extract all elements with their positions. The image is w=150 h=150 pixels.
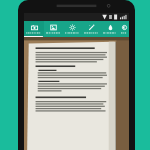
button[interactable]: Grey Mode [101,21,120,36]
button[interactable]: Lighten [63,21,82,36]
button[interactable]: Scan [24,21,44,36]
button[interactable]: Original [44,21,63,36]
button[interactable]: Scanned document preview [24,37,129,150]
button[interactable]: Magic Color [82,21,101,36]
button[interactable]: B&W [120,21,129,36]
